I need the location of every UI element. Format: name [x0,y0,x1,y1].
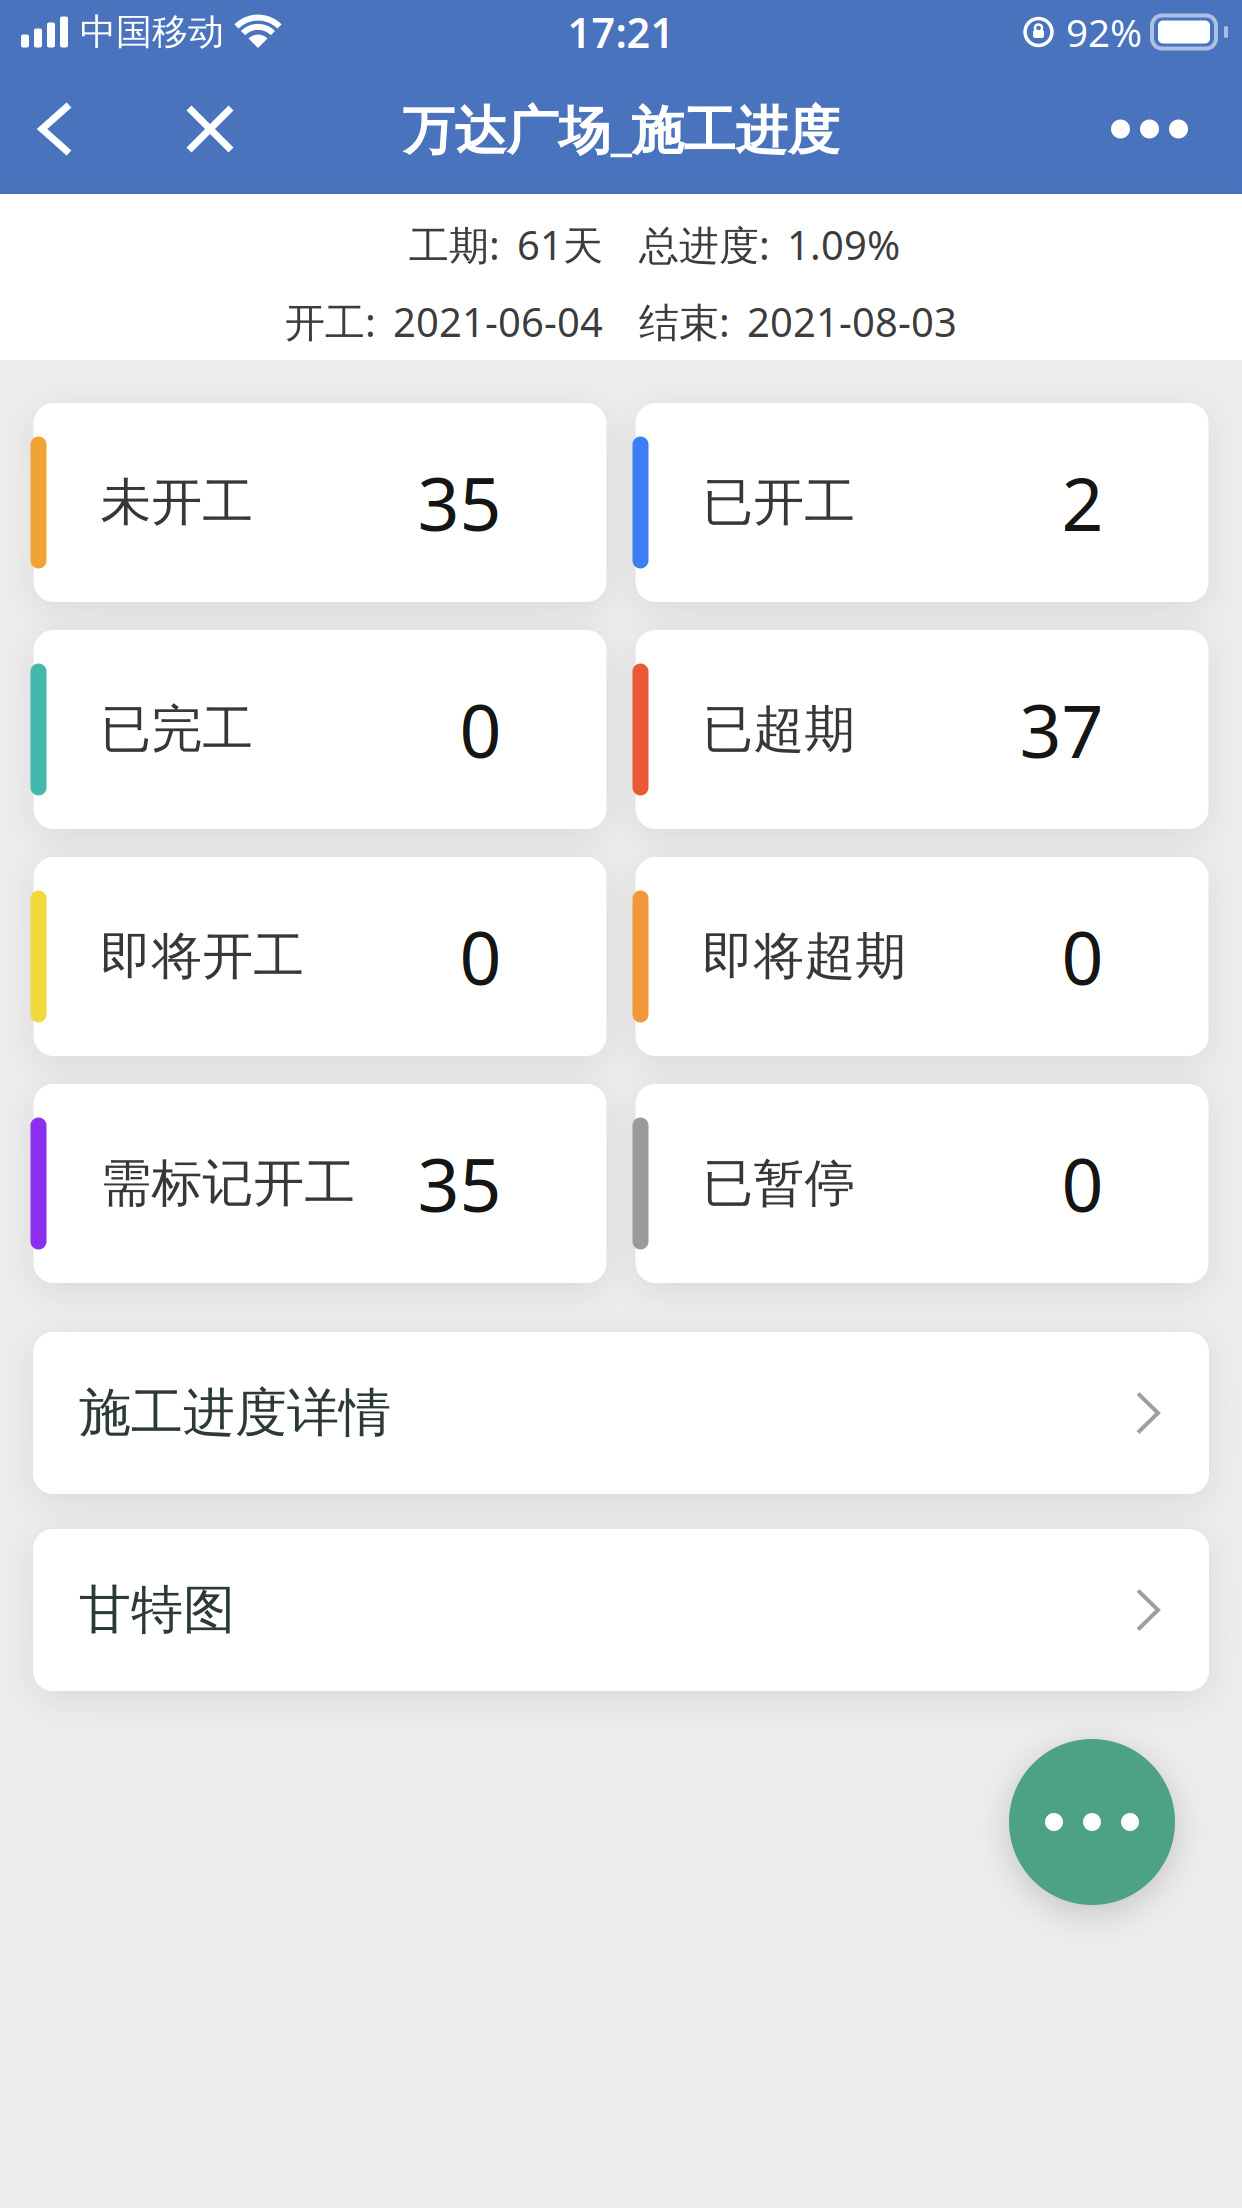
staticText: 0 [459,681,501,778]
staticText: 61天 [517,218,603,271]
button[interactable]: 已开工 [635,403,1208,602]
staticText: 0 [459,908,501,1005]
button[interactable]: 即将超期 [635,857,1208,1056]
staticText: 即将超期 [702,925,906,988]
staticText: 结束: [639,295,730,348]
button[interactable]: 未开工 [33,403,606,602]
staticText: 已暂停 [702,1152,855,1215]
staticText: 1.09% [787,218,900,271]
staticText: 开工: [285,295,376,348]
staticText: 甘特图 [79,1578,235,1642]
staticText: 需标记开工 [100,1152,355,1215]
staticText: 已开工 [702,471,855,534]
button[interactable]: 已暂停 [635,1084,1208,1283]
staticText: 工期: [409,218,500,271]
button[interactable]: 即将开工 [33,857,606,1056]
button[interactable]: More actions [1009,1739,1175,1905]
staticText: 万达广场_施工进度 [402,94,839,164]
staticText: 中国移动 [80,10,224,54]
staticText: 17:21 [567,5,674,59]
staticText: 37 [1019,681,1103,778]
button[interactable]: 甘特图 [33,1529,1209,1691]
button[interactable]: 施工进度详情 [33,1332,1209,1494]
button[interactable]: 需标记开工 [33,1084,606,1283]
button[interactable]: Close [89,108,251,150]
staticText: 2021-06-04 [393,295,603,348]
staticText: 未开工 [100,471,253,534]
staticText: 35 [417,1135,501,1232]
staticText: 35 [417,454,501,551]
staticText: 2 [1061,454,1103,551]
button[interactable]: 已完工 [33,630,606,829]
staticText: 已超期 [702,698,855,761]
staticText: 总进度: [639,218,770,271]
staticText: 0 [1061,1135,1103,1232]
staticText: 0 [1061,908,1103,1005]
button[interactable]: Back [0,105,89,153]
staticText: 2021-08-03 [747,295,957,348]
staticText: 即将开工 [100,925,304,988]
staticText: 92% [1066,6,1142,58]
button[interactable]: More [1111,119,1242,138]
staticText: 已完工 [100,698,253,761]
button[interactable]: 已超期 [635,630,1208,829]
staticText: 施工进度详情 [79,1381,391,1445]
